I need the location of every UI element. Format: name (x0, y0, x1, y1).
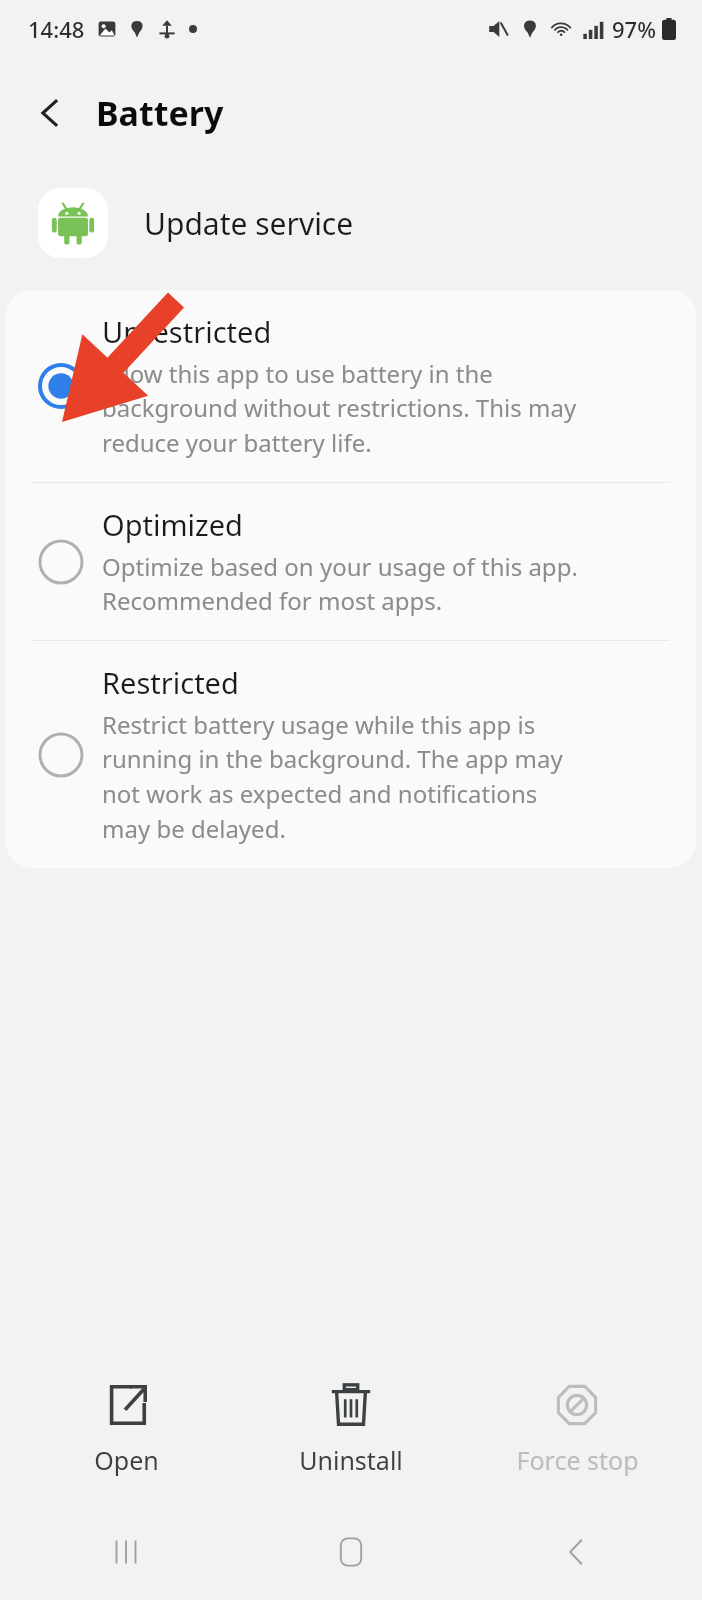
button[interactable]: Recents (26, 1504, 226, 1600)
button[interactable]: Back (477, 1504, 677, 1600)
staticText: Optimized (102, 505, 243, 544)
staticText: Force stop (516, 1443, 639, 1477)
staticText: Optimize based on your usage of this app… (102, 550, 578, 618)
staticText: Restrict battery usage while this app is… (102, 708, 563, 846)
button[interactable]: Update service (0, 168, 702, 278)
button[interactable]: Open (26, 1371, 226, 1487)
staticText: 97% (612, 14, 656, 44)
staticText: 14:48 (28, 14, 85, 44)
button[interactable]: Force stop (477, 1371, 677, 1487)
button[interactable]: Back (20, 82, 82, 144)
button[interactable]: Uninstall (251, 1371, 451, 1487)
button[interactable]: Restricted (6, 641, 696, 868)
staticText: Uninstall (299, 1443, 403, 1477)
button[interactable]: Home (251, 1504, 451, 1600)
staticText: Restricted (102, 663, 239, 702)
button[interactable]: Unrestricted (6, 290, 696, 482)
staticText: Open (94, 1443, 159, 1477)
staticText: Allow this app to use battery in the bac… (102, 357, 577, 460)
button[interactable]: Optimized (6, 483, 696, 640)
staticText: Update service (144, 203, 354, 244)
staticText: Unrestricted (102, 312, 272, 351)
staticText: Battery (96, 90, 224, 136)
